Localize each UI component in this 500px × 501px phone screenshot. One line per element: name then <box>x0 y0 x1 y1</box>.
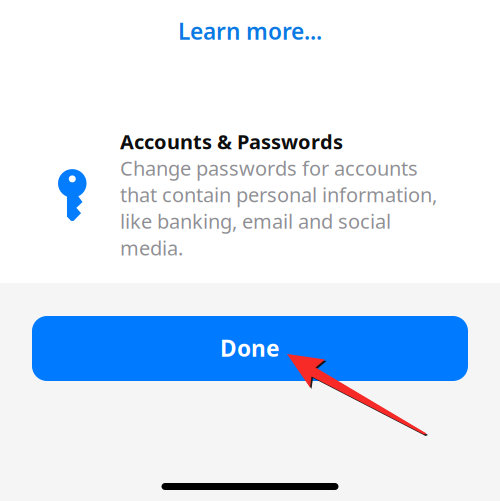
button[interactable]: Learn more... <box>0 8 500 54</box>
staticText: Accounts & Passwords <box>120 128 343 155</box>
staticText: Learn more... <box>178 16 322 46</box>
staticText: Done <box>220 333 280 363</box>
button[interactable]: Done <box>32 316 468 381</box>
staticText: Change passwords for accounts that conta… <box>120 155 437 261</box>
